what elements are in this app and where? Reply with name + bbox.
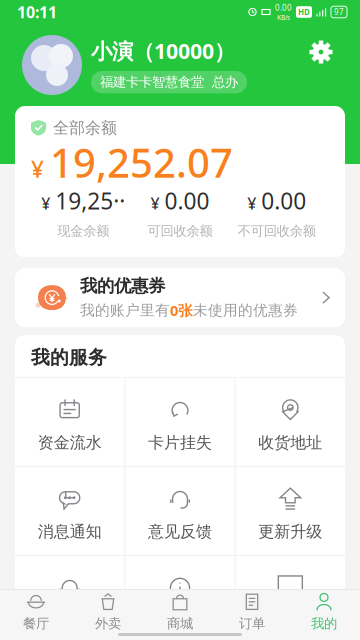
staticText: ¥ [150, 193, 159, 214]
staticText: 我的优惠券 [80, 275, 165, 296]
staticText: 外卖 [95, 615, 121, 632]
staticText: 19,252.07 [50, 136, 233, 189]
staticText: 我的 [311, 615, 337, 632]
button[interactable]: 餐厅 [0, 595, 72, 629]
staticText: ¥ [247, 193, 256, 214]
button[interactable]: 意见反馈 [125, 467, 235, 555]
button[interactable] [236, 556, 345, 640]
staticText: 0.00 [261, 186, 306, 216]
staticText: 意见反馈 [148, 522, 212, 542]
staticText: KB/s [277, 13, 290, 22]
button[interactable]: 商城 [144, 595, 216, 629]
staticText: HD [298, 7, 310, 17]
staticText: 可回收余额 [147, 223, 212, 239]
button[interactable]: 更新升级 [236, 467, 345, 555]
staticText: 资金流水 [38, 433, 102, 453]
button[interactable]: 我的 [288, 595, 360, 629]
staticText: 我的服务 [31, 346, 107, 369]
button[interactable]: 订单 [216, 595, 288, 629]
button[interactable]: 外卖 [72, 595, 144, 629]
button[interactable]: 消息通知 [15, 467, 124, 555]
staticText: 福建卡卡智慧食堂 总办 [100, 74, 238, 90]
staticText: 小演（10000） [91, 37, 235, 65]
button[interactable]: 设置 [308, 39, 334, 91]
staticText: ¥ [41, 193, 50, 214]
staticText: 收货地址 [258, 433, 322, 453]
button[interactable]: 收货地址 [236, 378, 345, 466]
staticText: 更新升级 [258, 522, 322, 542]
staticText: 商城 [167, 615, 193, 632]
staticText: 我的账户里有 [80, 301, 170, 319]
staticText: 消息通知 [38, 522, 102, 542]
staticText: 卡片挂失 [148, 433, 212, 453]
staticText: 0张 [170, 300, 193, 320]
staticText: 订单 [239, 615, 265, 632]
staticText: 未使用的优惠券 [193, 301, 298, 319]
button[interactable]: 关于我们 [125, 556, 235, 640]
staticText: 全部余额 [53, 118, 117, 138]
button[interactable]: 客服电话 [15, 556, 124, 640]
staticText: 10:11 [17, 1, 57, 23]
staticText: 0.00 [164, 186, 209, 216]
staticText: 不可回收余额 [238, 223, 316, 239]
staticText: 19,25·· [55, 186, 125, 216]
staticText: 现金余额 [57, 223, 109, 239]
button[interactable]: 卡片挂失 [125, 378, 235, 466]
staticText: 餐厅 [23, 615, 49, 632]
button[interactable]: 我的优惠券 [15, 268, 345, 327]
staticText: 97 [334, 7, 344, 17]
staticText: ¥ [31, 154, 44, 184]
staticText: 客服电话 [38, 611, 102, 631]
button[interactable]: 资金流水 [15, 378, 124, 466]
staticText: 0.00 [275, 2, 292, 13]
staticText: 关于我们 [148, 611, 212, 631]
